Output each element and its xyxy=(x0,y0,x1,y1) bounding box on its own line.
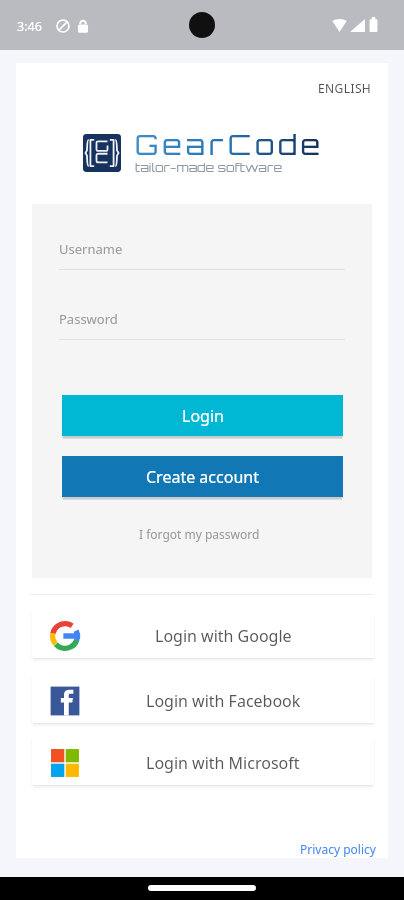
button[interactable]: I forgot my password xyxy=(131,520,268,548)
staticText: tailor-made software xyxy=(135,159,283,175)
staticText: 3:46 xyxy=(17,18,42,35)
staticText: Login with Facebook xyxy=(146,690,301,712)
staticText: Login with Google xyxy=(155,625,292,647)
button[interactable]: Login with Google xyxy=(32,613,374,658)
staticText: Username xyxy=(59,240,123,258)
button[interactable]: Login with Facebook xyxy=(32,678,374,723)
staticText: Gear xyxy=(135,127,228,162)
staticText: Password xyxy=(59,310,118,328)
staticText: Login with Microsoft xyxy=(146,752,300,774)
staticText: Login xyxy=(182,405,224,427)
button[interactable]: ENGLISH xyxy=(310,74,380,102)
staticText: Create account xyxy=(146,466,259,488)
staticText: Privacy policy xyxy=(300,841,376,857)
button[interactable]: Privacy policy xyxy=(294,835,382,863)
staticText: ENGLISH xyxy=(318,80,372,96)
button[interactable]: Login with Microsoft xyxy=(32,740,374,785)
button[interactable]: Login xyxy=(62,395,343,436)
staticText: I forgot my password xyxy=(139,526,260,542)
staticText: Code xyxy=(228,127,324,162)
button[interactable]: Create account xyxy=(62,456,343,497)
